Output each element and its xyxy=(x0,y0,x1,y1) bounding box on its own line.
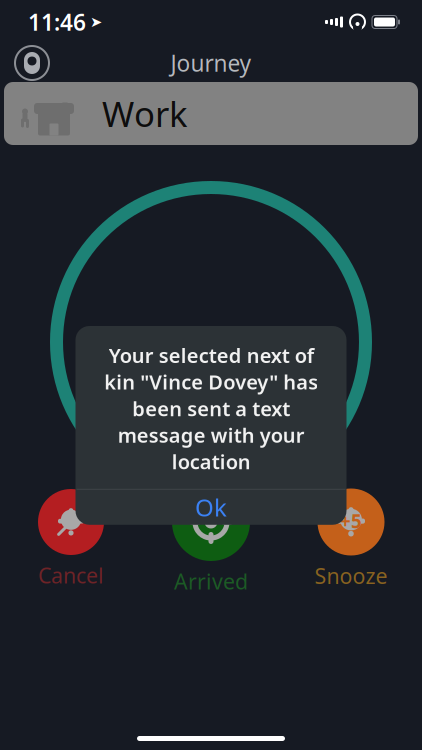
staticText: Ok xyxy=(195,491,227,523)
button[interactable]: Cancel xyxy=(38,489,104,589)
staticText: Arrived xyxy=(174,567,248,595)
staticText: Cancel xyxy=(38,561,104,589)
staticText: 11:46 xyxy=(28,7,86,37)
staticText: Journey xyxy=(170,48,251,78)
staticText: Your selected next of kin "Vince Dovey" … xyxy=(104,342,318,475)
button[interactable]: Menu xyxy=(10,43,54,83)
staticText: ➤ xyxy=(90,14,102,30)
staticText: +5 xyxy=(340,509,362,533)
button[interactable]: Work xyxy=(4,82,418,145)
button[interactable]: Arrived xyxy=(172,483,250,595)
button[interactable]: +5 xyxy=(314,488,387,590)
staticText: Work xyxy=(102,90,188,136)
staticText: -00:05:03 xyxy=(113,312,308,372)
button[interactable]: Ok xyxy=(75,490,346,525)
staticText: Snooze xyxy=(314,561,387,590)
